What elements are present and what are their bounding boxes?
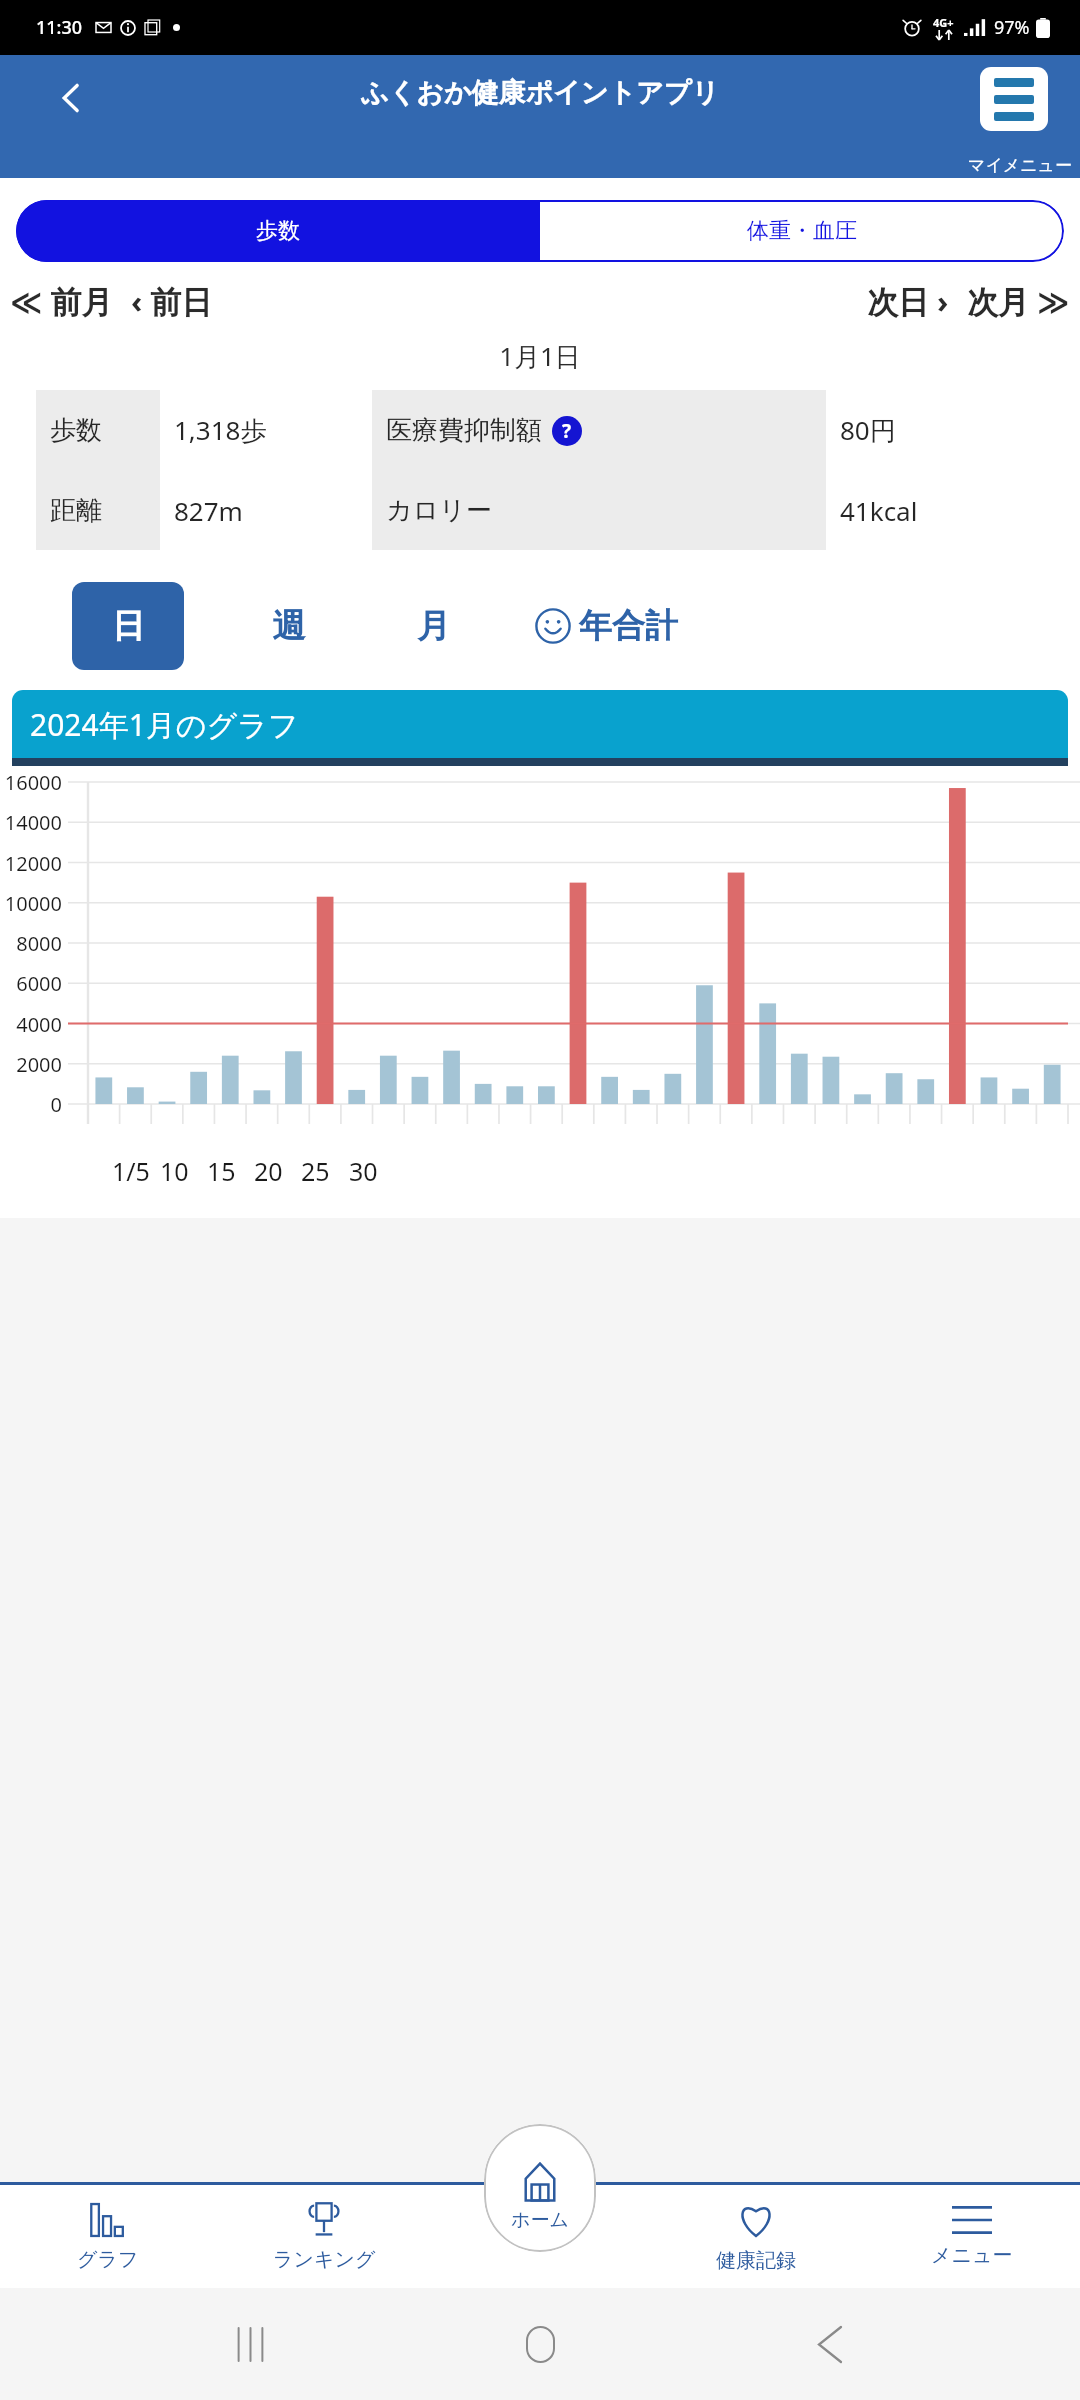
staticText: 827m: [174, 493, 243, 528]
staticText: 1月1日: [0, 338, 1080, 374]
staticText: 日: [112, 605, 145, 647]
staticText: ランキング: [273, 2247, 376, 2272]
staticText: ふくおか健康ポイントアプリ: [361, 76, 719, 110]
staticText: 健康記録: [716, 2248, 796, 2273]
staticText: 1,318歩: [174, 412, 267, 448]
button[interactable]: マイメニュー: [980, 67, 1048, 131]
staticText: 41kcal: [840, 493, 918, 528]
staticText: メニュー: [931, 2243, 1013, 2268]
staticText: 0: [0, 1091, 62, 1118]
staticText: 週: [272, 605, 305, 647]
staticText: 1/5: [112, 1154, 150, 1188]
staticText: 80円: [840, 412, 896, 448]
staticText: 次月 ≫: [967, 280, 1070, 322]
button[interactable]: 戻る: [36, 63, 106, 133]
staticText: 16000: [0, 769, 62, 796]
button[interactable]: 月: [417, 605, 450, 647]
staticText: 25: [301, 1154, 330, 1188]
staticText: 8000: [0, 930, 62, 957]
staticText: マイメニュー: [968, 155, 1072, 176]
staticText: 14000: [0, 809, 62, 836]
staticText: グラフ: [77, 2247, 139, 2272]
button[interactable]: 健康記録: [648, 2185, 864, 2288]
button[interactable]: 週: [272, 605, 305, 647]
button[interactable]: ランキング: [216, 2185, 432, 2288]
staticText: 年合計: [579, 605, 678, 647]
button[interactable]: ≪ 前月: [10, 280, 113, 322]
staticText: 月: [417, 605, 450, 647]
staticText: 体重・血圧: [747, 217, 857, 245]
button[interactable]: 年合計: [534, 605, 678, 647]
staticText: 15: [207, 1154, 236, 1188]
button[interactable]: ヘルプ: [552, 416, 582, 446]
button[interactable]: 歩数: [16, 200, 540, 262]
staticText: 97%: [994, 15, 1030, 40]
staticText: 医療費抑制額: [386, 414, 542, 447]
staticText: 10: [160, 1154, 189, 1188]
staticText: カロリー: [386, 494, 492, 527]
button[interactable]: ホーム: [500, 2304, 580, 2384]
staticText: 2000: [0, 1051, 62, 1078]
button[interactable]: 日: [72, 582, 184, 670]
staticText: ?: [562, 418, 572, 444]
staticText: 6000: [0, 970, 62, 997]
button[interactable]: 次日 ›: [867, 280, 949, 322]
button[interactable]: メニュー: [864, 2185, 1080, 2288]
staticText: 20: [254, 1154, 283, 1188]
button[interactable]: ‹ 前日: [131, 280, 213, 322]
staticText: ≪ 前月: [10, 280, 113, 322]
button[interactable]: 戻る: [790, 2304, 870, 2384]
staticText: 歩数: [50, 414, 102, 447]
staticText: ‹ 前日: [131, 280, 213, 322]
staticText: 4G+: [933, 15, 954, 30]
staticText: 11:30: [36, 15, 83, 40]
button[interactable]: 体重・血圧: [540, 200, 1064, 262]
staticText: 歩数: [256, 217, 300, 245]
button[interactable]: 最近のアプリ: [210, 2304, 290, 2384]
staticText: 2024年1月のグラフ: [30, 704, 299, 745]
staticText: 次日 ›: [867, 280, 949, 322]
button[interactable]: 次月 ≫: [967, 280, 1070, 322]
button[interactable]: グラフ: [0, 2185, 216, 2288]
staticText: 距離: [50, 494, 102, 527]
staticText: 12000: [0, 850, 62, 877]
staticText: ホーム: [511, 2208, 569, 2232]
staticText: 10000: [0, 890, 62, 917]
staticText: 4000: [0, 1011, 62, 1038]
button[interactable]: ホーム: [484, 2124, 596, 2252]
staticText: 30: [349, 1154, 378, 1188]
